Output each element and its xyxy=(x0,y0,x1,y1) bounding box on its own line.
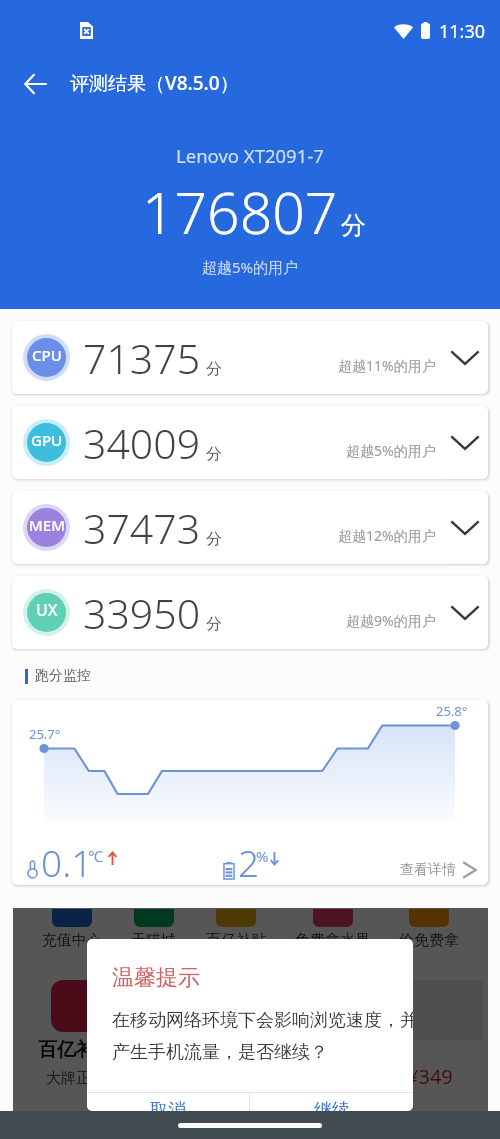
staticText: 25.8° xyxy=(436,702,468,720)
staticText: 查看详情 xyxy=(400,861,456,879)
staticText: 11:30 xyxy=(439,19,486,44)
staticText: 分 xyxy=(206,529,222,549)
staticText: 天猫城 xyxy=(131,931,176,950)
staticText: 百亿补贴 xyxy=(206,931,266,950)
button[interactable]: GPU xyxy=(12,406,488,479)
staticText: 0.1 xyxy=(41,837,93,885)
button[interactable]: MEM xyxy=(12,491,488,564)
button[interactable]: 继续 xyxy=(250,1093,413,1111)
staticText: 在移动网络环境下会影响浏览速度，并 产生手机流量，是否继续？ xyxy=(112,1009,413,1063)
staticText: 2 xyxy=(238,837,260,885)
staticText: % xyxy=(256,846,269,866)
staticText: ¥349 xyxy=(407,1063,453,1090)
staticText: CPU xyxy=(32,345,62,365)
staticText: 超越9%的用户 xyxy=(346,611,436,630)
staticText: 分 xyxy=(341,210,366,241)
button[interactable]: 查看详情 xyxy=(396,856,484,884)
staticText: UX xyxy=(36,599,58,621)
staticText: 超越12%的用户 xyxy=(338,526,436,545)
staticText: 百亿补贴 xyxy=(38,1038,114,1062)
button[interactable]: Back xyxy=(11,60,59,108)
staticText: 免费拿水果 xyxy=(295,931,370,950)
staticText: 分 xyxy=(206,614,222,634)
staticText: 充值中心 xyxy=(42,931,102,950)
staticText: 超越5%的用户 xyxy=(346,441,436,460)
staticText: 分 xyxy=(206,359,222,379)
staticText: 176807 xyxy=(142,173,338,251)
staticText: 37473 xyxy=(83,500,201,556)
staticText: 33950 xyxy=(83,585,201,641)
staticText: 价免费拿 xyxy=(399,931,459,950)
staticText: 评测结果（V8.5.0） xyxy=(70,70,239,96)
staticText: ℃ xyxy=(88,846,103,866)
staticText: Lenovo XT2091-7 xyxy=(176,143,324,168)
button[interactable]: UX xyxy=(12,576,488,649)
staticText: 跑分监控 xyxy=(35,667,91,685)
staticText: 大牌正品 xyxy=(46,1069,106,1088)
staticText: MEM xyxy=(29,515,65,535)
button[interactable]: CPU xyxy=(12,321,488,394)
staticText: 71375 xyxy=(83,330,201,386)
staticText: 温馨提示 xyxy=(112,964,200,992)
staticText: 取消 xyxy=(150,1099,186,1111)
staticText: 分 xyxy=(206,444,222,464)
staticText: 34009 xyxy=(83,415,201,471)
staticText: 25.7° xyxy=(29,725,61,743)
staticText: 继续 xyxy=(314,1099,350,1111)
staticText: GPU xyxy=(31,430,63,450)
staticText: 超越11%的用户 xyxy=(338,356,436,375)
staticText: 超越5%的用户 xyxy=(202,257,299,277)
button[interactable]: 取消 xyxy=(87,1093,249,1111)
